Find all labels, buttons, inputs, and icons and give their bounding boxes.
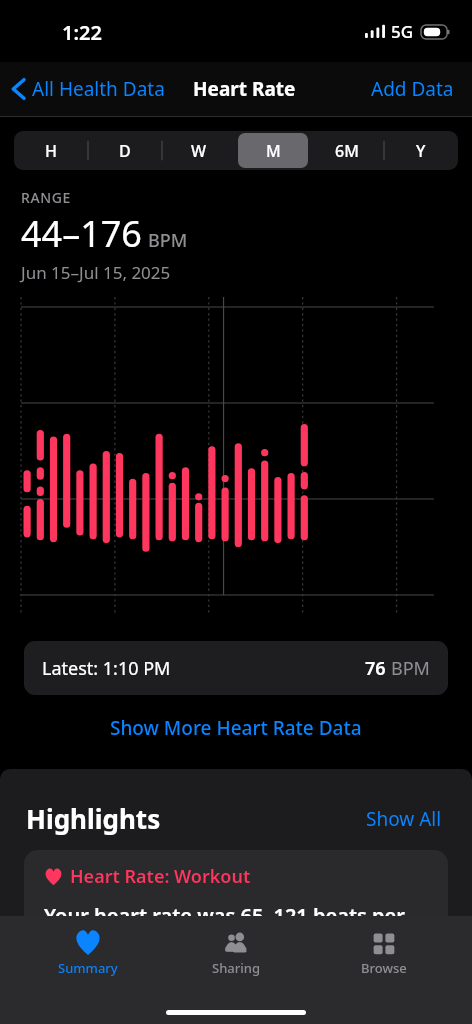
staticText: BPM xyxy=(391,656,430,681)
button[interactable]: Browse xyxy=(324,924,444,981)
button[interactable]: Summary xyxy=(28,924,148,981)
staticText: All Health Data xyxy=(32,76,165,102)
button[interactable]: D xyxy=(90,133,160,168)
staticText: Summary xyxy=(58,959,118,977)
button[interactable]: Sharing xyxy=(176,924,296,981)
staticText: D xyxy=(119,140,131,162)
staticText: M xyxy=(266,140,281,162)
button[interactable]: All Health Data xyxy=(8,70,169,108)
staticText: Show More Heart Rate Data xyxy=(110,715,362,741)
button[interactable]: Heart Rate: Workout xyxy=(24,850,448,970)
staticText: Y xyxy=(416,140,426,162)
staticText: 6M xyxy=(335,140,359,162)
staticText: W xyxy=(191,140,207,162)
staticText: Heart Rate xyxy=(193,76,296,102)
staticText: Latest: 1:10 PM xyxy=(42,656,171,681)
button[interactable]: 6M xyxy=(312,133,382,168)
button[interactable]: Show All xyxy=(362,802,446,836)
staticText: 1:22 xyxy=(62,19,102,46)
staticText: 76 xyxy=(365,656,386,681)
button[interactable]: W xyxy=(164,133,234,168)
staticText: Jun 15–Jul 15, 2025 xyxy=(21,261,171,284)
staticText: Your heart rate was 65–121 beats per min… xyxy=(44,902,428,956)
staticText: 44–176 xyxy=(21,209,142,258)
button[interactable]: M xyxy=(238,133,308,168)
staticText: BPM xyxy=(148,228,188,253)
staticText: Browse xyxy=(361,959,407,977)
staticText: RANGE xyxy=(21,188,71,207)
staticText: Sharing xyxy=(212,959,260,977)
button[interactable]: H xyxy=(16,133,86,168)
button[interactable]: Add Data xyxy=(353,68,472,110)
button[interactable]: Latest: 1:10 PM xyxy=(24,641,448,695)
staticText: 5G xyxy=(391,20,414,43)
staticText: Highlights xyxy=(26,801,161,836)
staticText: H xyxy=(45,140,57,162)
button[interactable]: Y xyxy=(386,133,456,168)
button[interactable]: Show More Heart Rate Data xyxy=(0,705,472,751)
staticText: Heart Rate: Workout xyxy=(70,864,251,889)
